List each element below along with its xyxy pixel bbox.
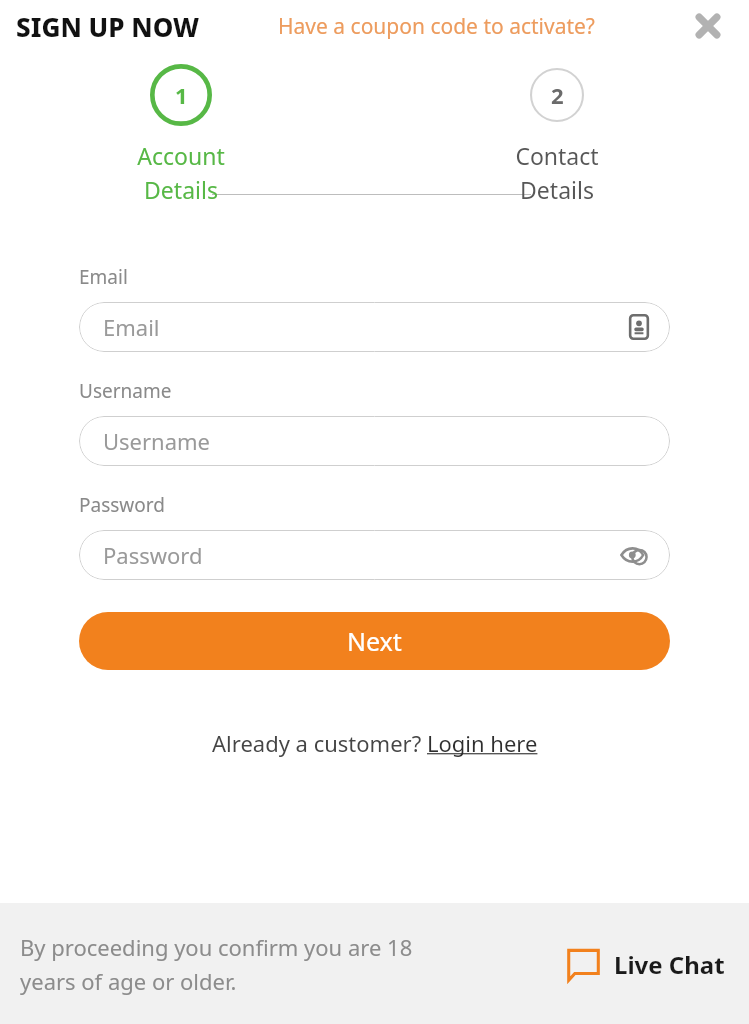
button[interactable]: Close xyxy=(690,8,726,44)
button[interactable]: Autofill contact xyxy=(626,314,652,340)
button[interactable]: 2 xyxy=(486,68,628,205)
staticText: Already a customer? xyxy=(212,728,427,758)
button[interactable]: Password xyxy=(79,530,670,580)
button[interactable]: Username xyxy=(79,416,670,466)
button[interactable]: 1 xyxy=(110,64,252,205)
staticText: Next xyxy=(347,624,402,658)
button[interactable]: Email xyxy=(79,302,670,352)
staticText: 1 xyxy=(175,80,188,110)
button[interactable]: Show password xyxy=(618,538,652,572)
staticText: Account Details xyxy=(137,140,225,205)
button[interactable]: Next xyxy=(79,612,670,670)
staticText: Username xyxy=(103,426,652,456)
staticText: Contact Details xyxy=(515,140,599,205)
button[interactable]: Have a coupon code to activate? xyxy=(278,12,595,41)
staticText: SIGN UP NOW xyxy=(16,9,200,44)
button[interactable]: Live Chat xyxy=(566,947,725,981)
staticText: Live Chat xyxy=(614,948,725,981)
staticText: Email xyxy=(79,264,128,290)
staticText: Password xyxy=(103,540,618,570)
staticText: Password xyxy=(79,492,165,518)
staticText: Email xyxy=(103,312,626,342)
staticText: By proceeding you confirm you are 18 yea… xyxy=(20,932,460,996)
staticText: Username xyxy=(79,378,172,404)
other: Live Chat xyxy=(566,947,600,981)
button[interactable]: Login here xyxy=(427,728,538,758)
staticText: 2 xyxy=(551,80,564,110)
